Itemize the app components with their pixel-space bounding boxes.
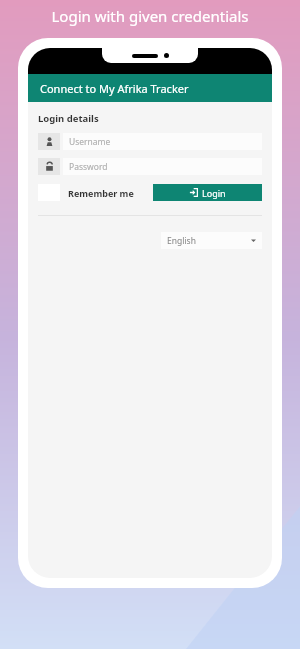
staticText: English <box>167 235 196 247</box>
staticText: Login <box>202 187 226 199</box>
button[interactable]: English <box>161 232 262 249</box>
button[interactable]: Remember me <box>38 184 138 201</box>
other: Password <box>45 162 54 171</box>
staticText: Login details <box>38 112 99 125</box>
staticText: Username <box>69 136 111 148</box>
staticText: Password <box>69 161 108 173</box>
button[interactable]: Username <box>38 133 262 150</box>
staticText: Login with given credentials <box>51 6 249 26</box>
button[interactable]: Login <box>153 184 262 201</box>
button[interactable]: Password <box>38 158 262 175</box>
staticText: Connect to My Afrika Tracker <box>40 81 189 96</box>
other: Username <box>45 137 54 146</box>
staticText: Remember me <box>68 187 134 199</box>
